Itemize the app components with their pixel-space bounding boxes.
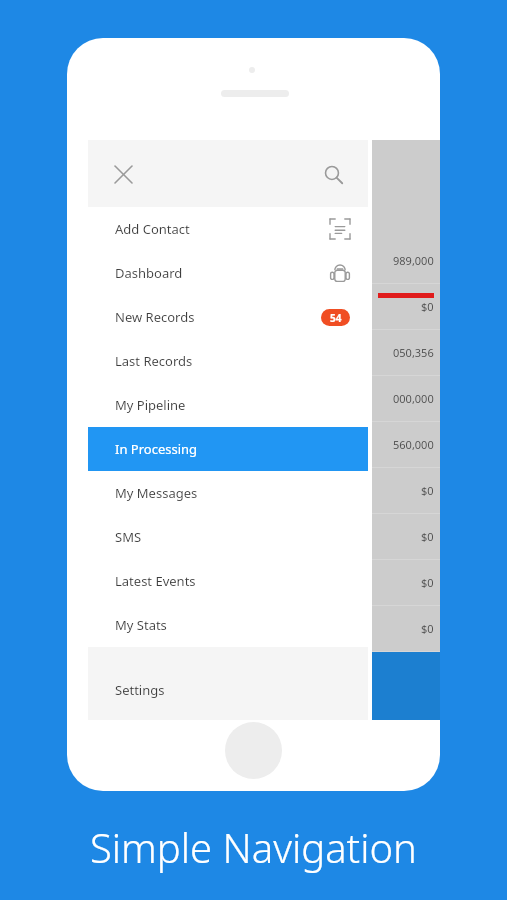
staticText: Dashboard <box>115 264 183 282</box>
button[interactable]: Settings <box>88 668 368 712</box>
staticText: Simple Navigation <box>90 820 417 874</box>
staticText: My Messages <box>115 484 198 502</box>
button[interactable]: Dashboard <box>88 251 368 295</box>
staticText: Settings <box>115 681 165 699</box>
button[interactable]: My Messages <box>88 471 368 515</box>
staticText: $0 <box>421 621 434 636</box>
button[interactable]: My Stats <box>88 603 368 647</box>
staticText: My Pipeline <box>115 396 186 414</box>
staticText: 989,000 <box>393 253 434 268</box>
staticText: My Stats <box>115 616 167 634</box>
staticText: $0 <box>421 575 434 590</box>
button[interactable]: Last Records <box>88 339 368 383</box>
staticText: SMS <box>115 528 142 546</box>
button[interactable]: Latest Events <box>88 559 368 603</box>
button[interactable]: In Processing <box>88 427 368 471</box>
button[interactable]: My Pipeline <box>88 383 368 427</box>
staticText: In Processing <box>115 440 198 458</box>
staticText: $0 <box>421 483 434 498</box>
staticText: Last Records <box>115 352 193 370</box>
staticText: 54 <box>330 311 342 325</box>
staticText: 050,356 <box>393 345 434 360</box>
button[interactable]: SMS <box>88 515 368 559</box>
button[interactable]: Add Contact <box>88 207 368 251</box>
staticText: $0 <box>421 299 434 314</box>
staticText: New Records <box>115 308 195 326</box>
staticText: Latest Events <box>115 572 196 590</box>
staticText: 000,000 <box>393 391 434 406</box>
staticText: 560,000 <box>393 437 434 452</box>
button[interactable]: New Records <box>88 295 368 339</box>
button[interactable]: Search <box>311 152 355 196</box>
staticText: Add Contact <box>115 220 190 238</box>
staticText: $0 <box>421 529 434 544</box>
button[interactable]: Close menu <box>101 152 145 196</box>
